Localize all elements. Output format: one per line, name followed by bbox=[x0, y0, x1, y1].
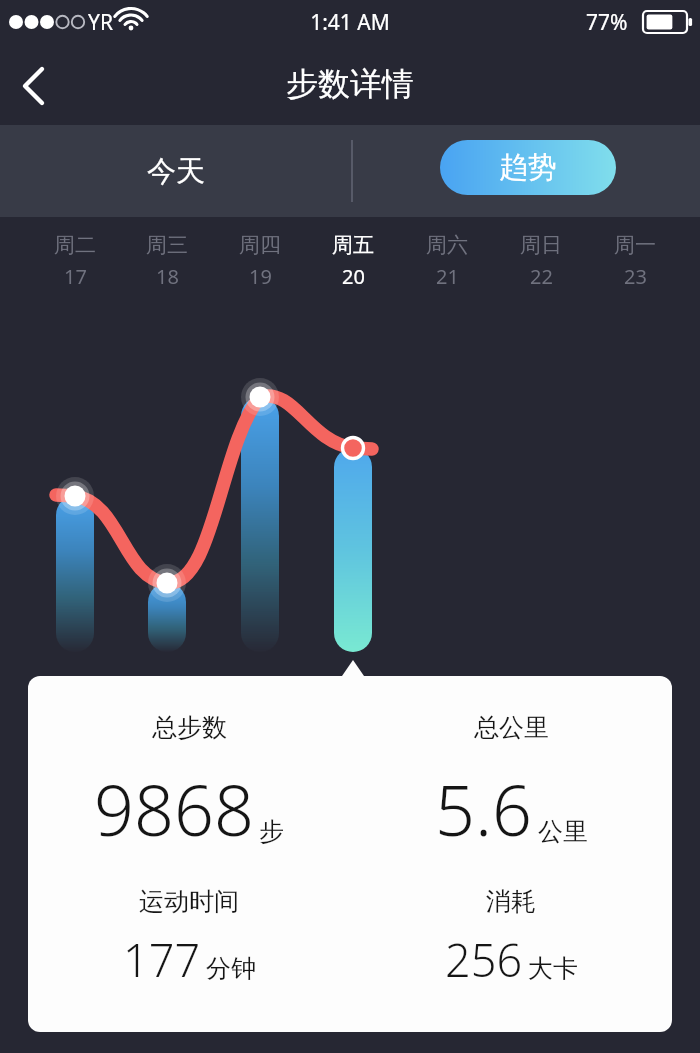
button[interactable]: 周六 bbox=[401, 217, 493, 309]
staticText: 周三 bbox=[146, 232, 188, 258]
button[interactable]: 总公里 bbox=[350, 712, 672, 856]
staticText: 9868 bbox=[94, 761, 254, 856]
staticText: 周六 bbox=[426, 232, 468, 258]
button[interactable]: 周一 bbox=[589, 217, 681, 309]
staticText: 17 bbox=[64, 263, 87, 290]
staticText: 5.6 bbox=[435, 761, 533, 856]
button[interactable]: 总步数 bbox=[28, 712, 350, 856]
staticText: YR bbox=[88, 8, 113, 37]
staticText: 周四 bbox=[239, 232, 281, 258]
button[interactable]: 消耗 bbox=[350, 886, 672, 990]
staticText: 分钟 bbox=[206, 953, 256, 984]
staticText: 256 bbox=[445, 929, 523, 990]
button[interactable]: 运动时间 bbox=[28, 886, 350, 990]
staticText: 步数详情 bbox=[0, 64, 700, 104]
staticText: 21 bbox=[436, 263, 459, 290]
staticText: 周一 bbox=[614, 232, 656, 258]
staticText: 19 bbox=[249, 263, 272, 290]
button[interactable]: 周五 bbox=[307, 217, 399, 309]
staticText: 运动时间 bbox=[139, 886, 239, 917]
staticText: 趋势 bbox=[499, 149, 557, 186]
staticText: 今天 bbox=[147, 153, 205, 190]
staticText: 18 bbox=[156, 263, 179, 290]
staticText: 周五 bbox=[332, 232, 374, 258]
staticText: 177 bbox=[123, 929, 201, 990]
button[interactable]: 周日 bbox=[495, 217, 587, 309]
staticText: 77% bbox=[586, 8, 628, 37]
button[interactable]: 周四 bbox=[214, 217, 306, 309]
staticText: 消耗 bbox=[486, 886, 536, 917]
staticText: 22 bbox=[530, 263, 553, 290]
staticText: 周日 bbox=[520, 232, 562, 258]
button[interactable]: Back bbox=[6, 55, 66, 115]
staticText: 公里 bbox=[538, 816, 588, 847]
button[interactable]: 周二 bbox=[29, 217, 121, 309]
staticText: 周二 bbox=[54, 232, 96, 258]
staticText: 1:41 AM bbox=[0, 8, 700, 37]
staticText: 20 bbox=[342, 263, 365, 290]
button[interactable]: 今天 bbox=[100, 125, 252, 217]
button[interactable]: 周三 bbox=[121, 217, 213, 309]
staticText: 步 bbox=[259, 816, 284, 847]
staticText: 总步数 bbox=[152, 712, 227, 743]
button[interactable]: 趋势 bbox=[440, 140, 616, 195]
staticText: 大卡 bbox=[528, 953, 578, 984]
staticText: 23 bbox=[624, 263, 647, 290]
staticText: 总公里 bbox=[474, 712, 549, 743]
